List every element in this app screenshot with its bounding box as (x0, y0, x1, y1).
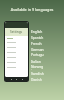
button[interactable] (5, 45, 28, 50)
staticText: Danish (31, 77, 42, 81)
button[interactable]: Italian (31, 58, 44, 64)
staticText: French (31, 41, 42, 45)
button[interactable]: Portuguese (31, 52, 44, 58)
staticText: German (31, 47, 44, 51)
button[interactable] (5, 55, 28, 60)
button[interactable]: German (31, 46, 44, 52)
staticText: Italian (31, 59, 41, 63)
staticText: Available in 9 languages (0, 7, 64, 12)
staticText: Portuguese (31, 52, 44, 58)
button[interactable] (5, 60, 28, 65)
other: Navigation bar (6, 77, 27, 82)
button[interactable]: Settings (5, 22, 28, 77)
button[interactable]: Danish (31, 76, 44, 82)
button[interactable] (5, 50, 28, 55)
button[interactable] (5, 65, 28, 70)
staticText: Spanish (31, 35, 44, 39)
staticText: Swedish (31, 71, 44, 75)
button[interactable] (5, 40, 28, 45)
button[interactable]: French (31, 40, 44, 46)
staticText: English (31, 29, 43, 33)
button[interactable]: Spanish (31, 34, 44, 40)
button[interactable]: English (31, 28, 44, 34)
staticText: Settings (10, 30, 23, 34)
button[interactable]: Swedish (31, 70, 44, 76)
button[interactable]: Norwegian (31, 64, 44, 70)
staticText: Norwegian (31, 64, 44, 70)
